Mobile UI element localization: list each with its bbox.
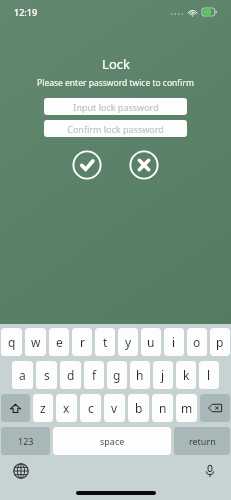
staticText: d [67, 367, 75, 383]
staticText: g [113, 367, 121, 383]
button[interactable]: Change keyboard language [13, 463, 29, 479]
button[interactable]: n [152, 394, 173, 422]
button[interactable]: t [95, 328, 115, 356]
staticText: m [181, 400, 193, 416]
button[interactable]: e [49, 328, 69, 356]
staticText: k [183, 367, 190, 383]
staticText: l [207, 367, 211, 383]
staticText: u [147, 334, 155, 350]
staticText: a [19, 367, 26, 383]
button[interactable]: i [164, 328, 184, 356]
staticText: w [31, 334, 41, 350]
button[interactable]: d [60, 361, 81, 389]
button[interactable]: Input lock password [44, 98, 187, 115]
button[interactable]: x [56, 394, 77, 422]
button[interactable]: Dictate [202, 463, 218, 479]
staticText: space [100, 435, 125, 447]
staticText: Lock [102, 55, 130, 73]
staticText: b [135, 400, 143, 416]
button[interactable]: 123 [1, 427, 50, 455]
staticText: 12:19 [14, 6, 38, 18]
button[interactable]: m [176, 394, 197, 422]
button[interactable]: l [199, 361, 219, 389]
staticText: e [56, 334, 63, 350]
button[interactable]: Confirm lock password [44, 120, 187, 137]
staticText: y [125, 334, 132, 350]
button[interactable]: return [174, 427, 230, 455]
staticText: 123 [18, 435, 34, 447]
button[interactable]: space [53, 427, 171, 455]
button[interactable]: c [80, 394, 101, 422]
staticText: z [40, 400, 46, 416]
staticText: Confirm lock password [67, 123, 164, 135]
button[interactable]: s [36, 361, 57, 389]
staticText: r [80, 334, 85, 350]
button[interactable]: p [210, 328, 230, 356]
button[interactable]: z [33, 394, 53, 422]
staticText: x [63, 400, 70, 416]
staticText: i [172, 334, 176, 350]
button[interactable]: a [12, 361, 33, 389]
button[interactable]: y [118, 328, 138, 356]
staticText: q [8, 334, 16, 350]
staticText: h [136, 367, 144, 383]
staticText: Input lock password [73, 101, 159, 113]
button[interactable]: g [107, 361, 127, 389]
button[interactable]: j [153, 361, 173, 389]
button[interactable]: Backspace [200, 394, 230, 422]
staticText: o [193, 334, 201, 350]
staticText: j [161, 367, 165, 383]
button[interactable]: Shift [1, 394, 30, 422]
button[interactable]: v [104, 394, 125, 422]
button[interactable]: Confirm [72, 150, 102, 180]
staticText: n [159, 400, 167, 416]
staticText: v [111, 400, 118, 416]
button[interactable]: u [141, 328, 161, 356]
button[interactable]: q [1, 328, 22, 356]
button[interactable]: b [128, 394, 149, 422]
staticText: t [103, 334, 108, 350]
staticText: return [189, 435, 216, 447]
staticText: f [92, 367, 97, 383]
button[interactable]: w [25, 328, 46, 356]
button[interactable]: k [176, 361, 196, 389]
button[interactable]: r [72, 328, 92, 356]
button[interactable]: o [187, 328, 207, 356]
staticText: c [88, 400, 94, 416]
staticText: p [216, 334, 224, 350]
button[interactable]: h [130, 361, 150, 389]
button[interactable]: f [84, 361, 104, 389]
staticText: Please enter password twice to confirm [37, 77, 194, 89]
button[interactable]: Cancel [129, 150, 159, 180]
staticText: s [44, 367, 50, 383]
